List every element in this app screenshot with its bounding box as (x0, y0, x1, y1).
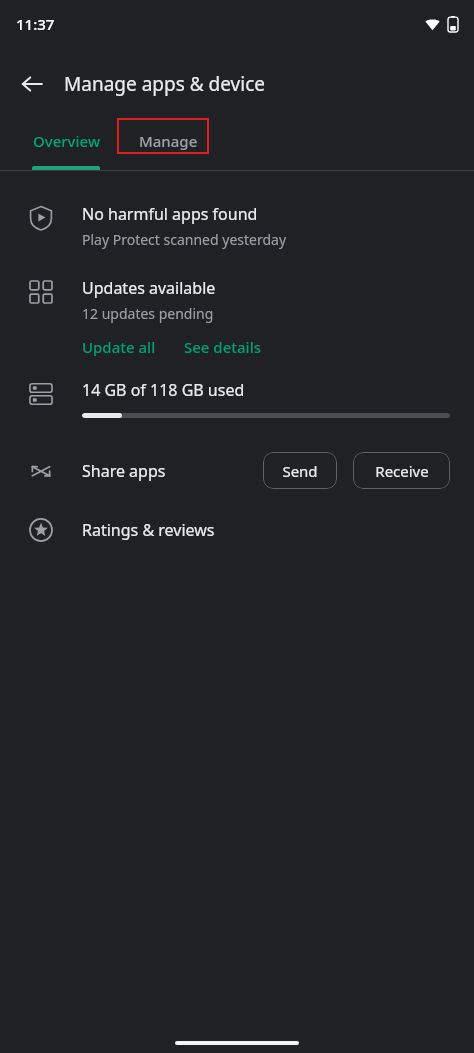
button[interactable]: See details (184, 337, 261, 357)
staticText: Ratings & reviews (82, 519, 215, 541)
staticText: Receive (375, 461, 429, 481)
button[interactable]: Manage (122, 112, 214, 170)
staticText: Overview (33, 131, 100, 151)
staticText: 14 GB of 118 GB used (82, 379, 245, 401)
staticText: Send (282, 461, 318, 481)
staticText: Play Protect scanned yesterday (82, 230, 287, 249)
button[interactable]: Back (8, 60, 56, 108)
button[interactable]: Receive (353, 452, 450, 489)
staticText: Manage (139, 131, 198, 151)
staticText: Updates available (82, 277, 216, 299)
staticText: 12 updates pending (82, 304, 214, 323)
button[interactable]: Send (263, 452, 337, 489)
staticText: Manage apps & device (64, 71, 265, 97)
button[interactable]: Update all (82, 337, 156, 357)
staticText: No harmful apps found (82, 203, 258, 225)
button[interactable]: No harmful apps found (0, 203, 474, 249)
staticText: See details (184, 337, 261, 357)
staticText: 11:37 (16, 14, 55, 34)
button[interactable]: 14 GB of 118 GB used (0, 379, 474, 418)
button[interactable]: Ratings & reviews (0, 515, 474, 545)
staticText: Update all (82, 337, 156, 357)
button[interactable]: Overview (10, 112, 122, 170)
staticText: Share apps (82, 460, 166, 482)
